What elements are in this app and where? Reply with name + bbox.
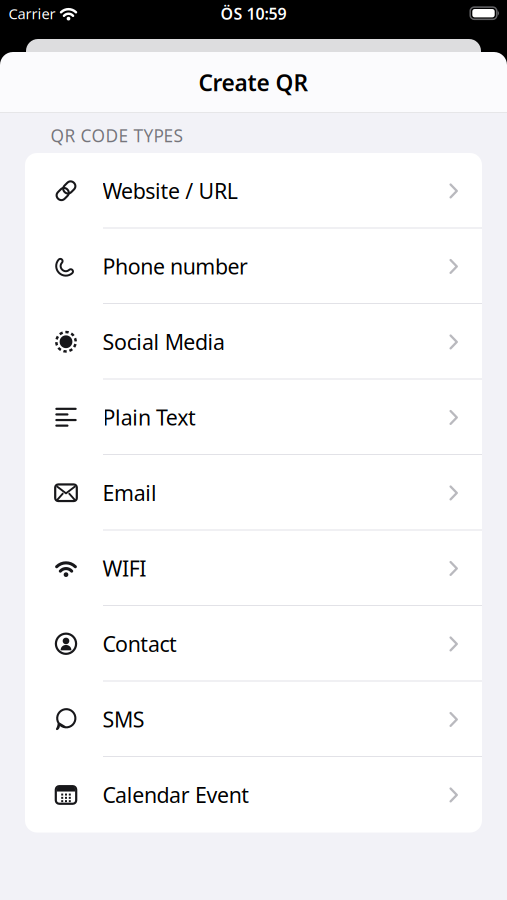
staticText: ÖS 10:59 [220,3,286,24]
staticText: SMS [102,705,145,733]
staticText: Create QR [198,67,308,97]
staticText: Calendar Event [102,781,249,809]
button[interactable]: Phone number [25,228,482,304]
button[interactable]: Social Media [25,304,482,379]
button[interactable]: Email [25,455,482,530]
staticText: Plain Text [102,403,196,431]
button[interactable]: WIFI [25,530,482,606]
staticText: Phone number [102,252,248,280]
staticText: Social Media [102,328,225,356]
button[interactable]: Website / URL [25,153,482,228]
staticText: WIFI [102,554,146,582]
staticText: Carrier [8,4,55,23]
staticText: Contact [102,630,177,658]
button[interactable]: Plain Text [25,379,482,455]
button[interactable]: SMS [25,681,482,757]
staticText: QR CODE TYPES [50,124,183,147]
button[interactable]: Contact [25,606,482,681]
staticText: Email [102,479,157,507]
staticText: Website / URL [102,177,238,205]
button[interactable]: Calendar Event [25,757,482,832]
